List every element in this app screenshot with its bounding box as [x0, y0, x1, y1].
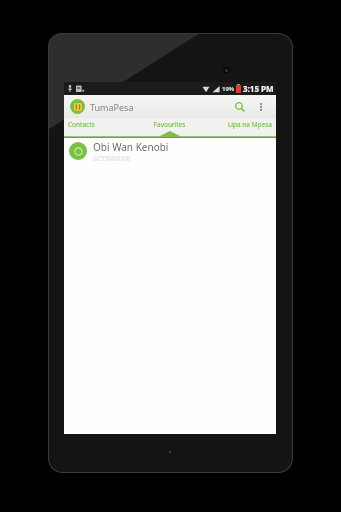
staticText: TumaPesa — [90, 101, 134, 113]
button[interactable]: More options — [252, 98, 270, 116]
staticText: 0755000000 — [93, 154, 131, 163]
button[interactable]: Obi Wan Kenobi — [64, 138, 276, 164]
staticText: Obi Wan Kenobi — [93, 140, 169, 154]
staticText: 19% — [222, 85, 235, 93]
button[interactable]: Contacts — [64, 118, 134, 131]
staticText: Favourites — [134, 120, 205, 129]
button[interactable]: Favourites — [134, 118, 205, 131]
staticText: 3:15 PM — [243, 83, 274, 94]
staticText: Contacts — [68, 120, 134, 129]
button[interactable]: Search — [230, 97, 250, 117]
staticText: Lipa na Mpesa — [205, 120, 272, 129]
button[interactable]: Lipa na Mpesa — [205, 118, 276, 131]
